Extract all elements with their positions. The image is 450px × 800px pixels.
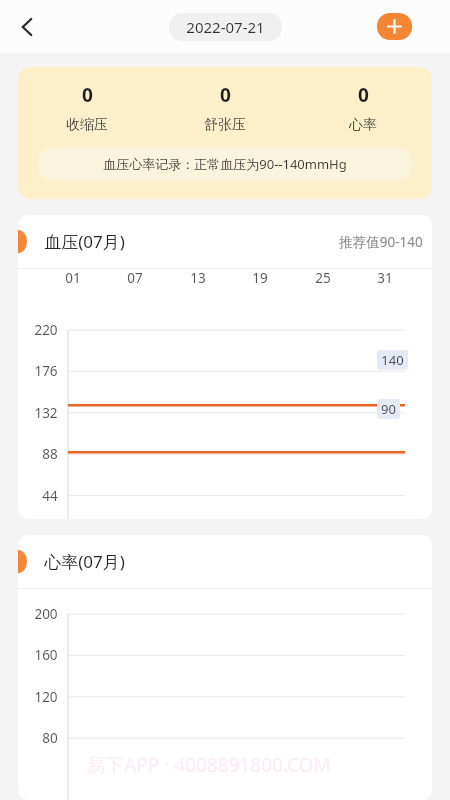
- staticText: 血压心率记录：正常血压为90--140mmHg: [103, 155, 347, 173]
- staticText: 90: [381, 400, 396, 418]
- button[interactable]: 2022-07-21: [169, 13, 282, 41]
- staticText: 220: [34, 321, 58, 339]
- staticText: 80: [42, 729, 58, 747]
- staticText: 25: [315, 269, 331, 287]
- staticText: 200: [34, 605, 58, 623]
- staticText: 31: [377, 269, 393, 287]
- staticText: 176: [34, 362, 58, 380]
- button[interactable]: Add record: [377, 13, 412, 40]
- staticText: 心率(07月): [44, 550, 125, 573]
- staticText: 160: [34, 646, 58, 664]
- staticText: 血压(07月): [44, 230, 125, 253]
- staticText: 01: [65, 269, 81, 287]
- button[interactable]: 0: [18, 67, 432, 199]
- staticText: 19: [252, 269, 268, 287]
- button[interactable]: Back: [8, 7, 48, 47]
- staticText: 心率: [349, 116, 377, 134]
- staticText: 舒张压: [204, 116, 246, 134]
- staticText: 13: [190, 269, 206, 287]
- staticText: 推荐值90-140: [339, 233, 423, 251]
- button[interactable]: 心率(07月): [18, 535, 432, 800]
- button[interactable]: 血压(07月): [18, 215, 432, 519]
- staticText: 2022-07-21: [186, 17, 265, 37]
- staticText: 收缩压: [66, 116, 108, 134]
- staticText: 44: [42, 487, 58, 505]
- staticText: 140: [381, 351, 404, 369]
- staticText: 0: [82, 82, 93, 108]
- staticText: 132: [34, 404, 58, 422]
- staticText: 0: [358, 82, 369, 108]
- staticText: 120: [34, 688, 58, 706]
- staticText: 0: [220, 82, 231, 108]
- staticText: 07: [127, 269, 143, 287]
- staticText: 88: [42, 445, 58, 463]
- staticText: 易下APP · 4008891800.COM: [86, 752, 331, 778]
